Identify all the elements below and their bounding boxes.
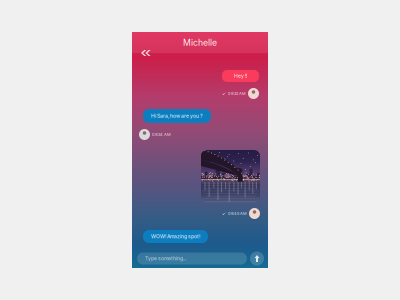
button[interactable]: Send [250,251,264,265]
staticText: Type something... [145,255,186,261]
staticText: Hi Sara, how are you ? [151,113,203,119]
button[interactable]: Photo attachment [201,150,260,203]
button[interactable]: Type something... [137,252,247,264]
button[interactable]: Back [132,47,155,59]
staticText: 09:45 AM [228,211,247,216]
staticText: Hey !! [234,73,247,79]
staticText: Michelle [183,37,217,48]
button[interactable]: Hi Sara, how are you ? [143,109,211,123]
staticText: 09:32 AM [228,91,246,96]
button[interactable]: Hey !! [222,70,259,82]
button[interactable]: WOW! Amazing spot! [143,230,208,243]
staticText: WOW! Amazing spot! [151,233,200,239]
staticText: 09:34 AM [152,132,171,137]
